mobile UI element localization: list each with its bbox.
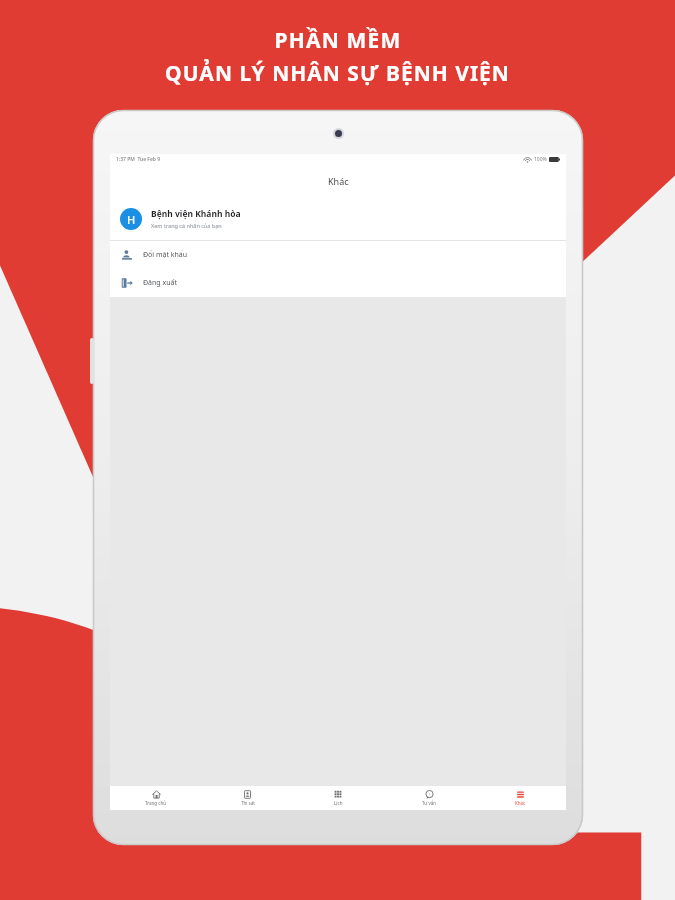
staticText: Tư vấn (422, 800, 437, 806)
staticText: Khác (515, 800, 526, 806)
button[interactable]: Thi sát (202, 786, 293, 810)
staticText: Đăng xuất (143, 278, 177, 288)
staticText: Lịch (334, 800, 343, 806)
button[interactable]: Tư vấn (384, 786, 475, 810)
staticText: Xem trang cá nhân của bạn (151, 222, 222, 229)
button[interactable]: Trang chủ (110, 786, 202, 810)
button[interactable]: Khác (475, 786, 566, 810)
button[interactable]: H (110, 197, 566, 240)
staticText: PHẦN MỀM (274, 26, 402, 55)
button[interactable]: Đổi mật khẩu (110, 241, 566, 269)
staticText: Thi sát (241, 800, 255, 806)
staticText: Trang chủ (145, 800, 167, 806)
staticText: 100% (534, 156, 547, 163)
staticText: Bệnh viện Khánh hòa (151, 208, 241, 220)
staticText: 1:37 PM Tue Feb 9 (116, 156, 161, 163)
button[interactable]: Lịch (293, 786, 384, 810)
staticText: QUẢN LÝ NHÂN SỰ BỆNH VIỆN (165, 59, 510, 88)
staticText: Khác (328, 175, 349, 187)
staticText: Đổi mật khẩu (143, 250, 188, 260)
button[interactable]: Đăng xuất (110, 269, 566, 297)
staticText: H (127, 212, 136, 227)
